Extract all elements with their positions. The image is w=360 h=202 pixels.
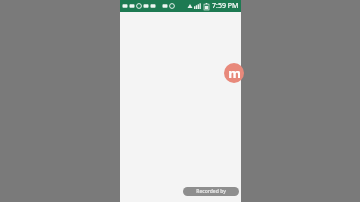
- staticText: m: [228, 64, 241, 82]
- staticText: Recorded by ScreenCam: [183, 188, 239, 195]
- staticText: 7:59 PM: [212, 1, 239, 11]
- button[interactable]: Chat head: [224, 63, 244, 83]
